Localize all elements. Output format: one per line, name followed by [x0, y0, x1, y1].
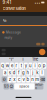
staticText: s [9, 70, 11, 75]
button[interactable]: r [15, 63, 19, 69]
button[interactable]: o [38, 63, 42, 69]
button[interactable]: c [17, 76, 21, 83]
button[interactable]: Attach [2, 49, 6, 51]
staticText: Aa [3, 18, 7, 23]
button[interactable]: p [42, 63, 46, 69]
staticText: ⌫ [40, 77, 45, 82]
staticText: z [9, 77, 11, 82]
staticText: 9:41 [3, 0, 12, 5]
button[interactable]: n [31, 76, 35, 83]
staticText: t [21, 63, 22, 68]
button[interactable]: l [40, 69, 44, 76]
staticText: ▪▪▪ [34, 1, 40, 4]
button[interactable]: y [24, 63, 28, 69]
staticText: 123 [4, 85, 9, 88]
staticText: g [22, 70, 25, 75]
button[interactable]: f [17, 69, 21, 76]
staticText: x [13, 77, 15, 82]
button[interactable]: v [21, 76, 25, 83]
button[interactable]: Conversation [3, 6, 26, 11]
staticText: n [31, 77, 34, 82]
staticText: e [11, 63, 13, 68]
button[interactable]: 123 [4, 83, 9, 89]
button[interactable]: s [8, 69, 12, 76]
button[interactable]: ☺ [10, 83, 14, 89]
staticText: The [32, 57, 38, 62]
staticText: reply [4, 36, 12, 39]
staticText: Message [6, 30, 21, 34]
button[interactable]: ⇧ [2, 76, 7, 83]
button[interactable]: m [35, 76, 39, 83]
staticText: v [22, 77, 24, 82]
staticText: h [27, 70, 30, 75]
button[interactable]: t [19, 63, 23, 69]
staticText: d [13, 70, 16, 75]
button[interactable]: u [28, 63, 32, 69]
staticText: u [29, 63, 32, 68]
staticText: ⇧ [2, 77, 6, 82]
button[interactable]: q [1, 63, 5, 69]
staticText: a [4, 70, 6, 75]
button[interactable]: k [35, 69, 39, 76]
staticText: return [35, 83, 43, 90]
button[interactable]: space [14, 83, 34, 89]
button[interactable]: w [5, 63, 9, 69]
button[interactable]: h [26, 69, 30, 76]
staticText: y [25, 63, 27, 68]
staticText: ☺ [10, 84, 14, 88]
staticText: w [6, 63, 9, 68]
staticText: r [16, 63, 18, 68]
staticText: “I” [9, 57, 14, 62]
button[interactable]: Tools [2, 53, 6, 55]
staticText: m [35, 77, 39, 82]
button[interactable]: i [33, 63, 37, 69]
staticText: c [18, 77, 20, 82]
staticText: Conversation [3, 6, 26, 11]
button[interactable]: x [12, 76, 16, 83]
staticText: p [43, 63, 46, 68]
staticText: space [19, 84, 29, 88]
button[interactable]: return [35, 83, 43, 89]
button[interactable]: e [10, 63, 14, 69]
staticText: o [38, 63, 41, 68]
button[interactable]: a [3, 69, 7, 76]
staticText: f [18, 70, 20, 75]
staticText: k [36, 70, 38, 75]
staticText: b [27, 77, 30, 82]
staticText: i [35, 63, 36, 68]
staticText: I [22, 57, 23, 62]
button[interactable]: g [21, 69, 25, 76]
button[interactable]: z [8, 76, 12, 83]
button[interactable]: Send [39, 49, 45, 55]
button[interactable]: j [31, 69, 35, 76]
button[interactable]: d [12, 69, 16, 76]
staticText: j [32, 70, 33, 75]
staticText: q [1, 63, 4, 68]
button[interactable]: b [26, 76, 30, 83]
button[interactable]: ⌫ [40, 76, 45, 83]
